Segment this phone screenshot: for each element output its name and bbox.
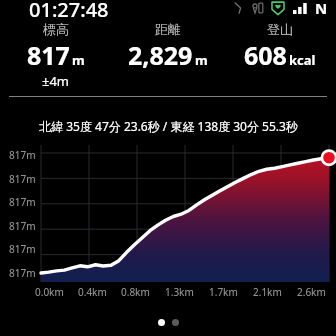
staticText: 2,829: [128, 38, 193, 72]
staticText: N: [315, 0, 328, 18]
staticText: kcal: [289, 51, 316, 69]
staticText: 距離: [155, 21, 181, 37]
staticText: 817: [27, 38, 70, 72]
staticText: 817m: [9, 195, 36, 209]
staticText: 817m: [9, 242, 36, 256]
staticText: 01:27:48: [29, 0, 109, 17]
button[interactable]: 距離: [112, 21, 224, 72]
staticText: 登山: [267, 21, 293, 37]
staticText: 2.1km: [253, 285, 282, 299]
staticText: 608: [244, 38, 287, 72]
other: Heart rate: [271, 1, 285, 15]
staticText: ±4m: [42, 72, 70, 90]
other: Location: [252, 2, 264, 14]
staticText: 2.6km: [297, 285, 326, 299]
staticText: 817m: [9, 266, 36, 280]
staticText: 0.4km: [78, 285, 107, 299]
staticText: m: [195, 51, 208, 69]
button[interactable]: Page 1: [158, 319, 165, 326]
staticText: 1.3km: [165, 285, 194, 299]
staticText: 北緯 35度 47分 23.6秒 / 東経 138度 30分 55.3秒: [39, 118, 298, 134]
staticText: 0.0km: [35, 285, 64, 299]
other: Navigation: [234, 2, 246, 14]
staticText: 817m: [9, 148, 36, 162]
staticText: 0.8km: [121, 285, 150, 299]
button[interactable]: 標高: [0, 21, 112, 90]
staticText: 標高: [43, 21, 69, 37]
staticText: 817m: [9, 219, 36, 233]
other: Signal strength: [293, 3, 307, 14]
staticText: 817m: [9, 172, 36, 186]
staticText: m: [72, 51, 85, 69]
staticText: 1.7km: [209, 285, 238, 299]
button[interactable]: 登山: [224, 21, 336, 72]
button[interactable]: Page 2: [172, 319, 179, 326]
